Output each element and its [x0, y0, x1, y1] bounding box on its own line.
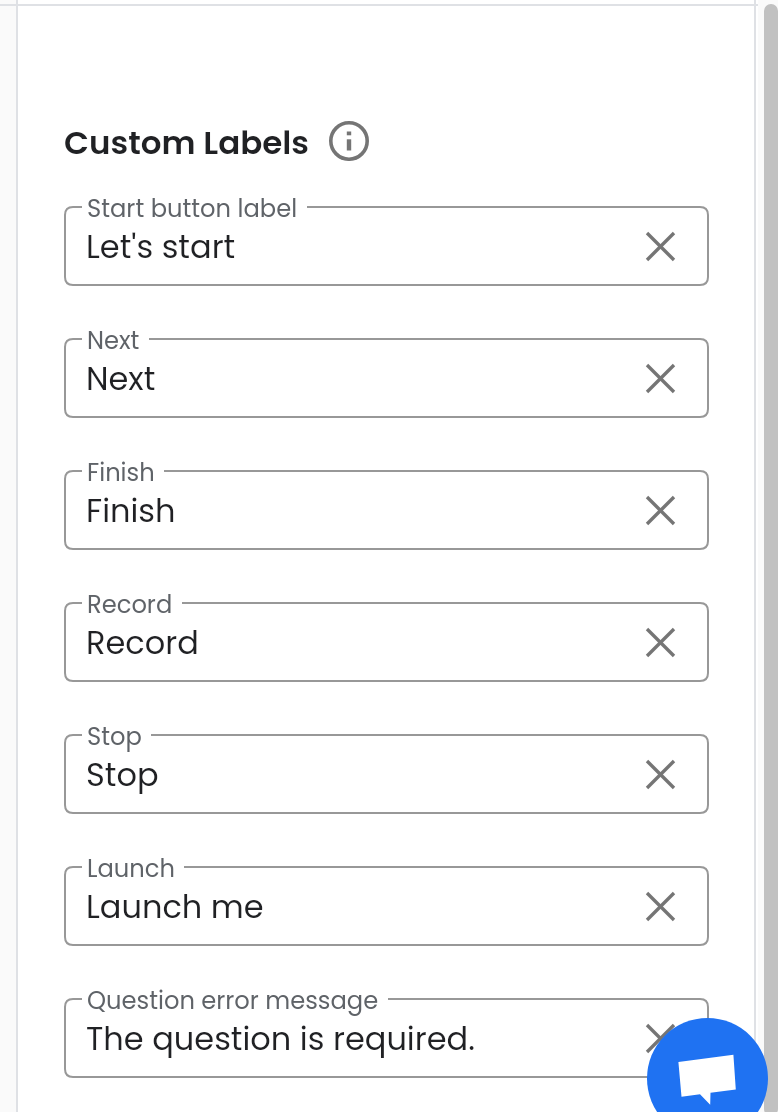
- button[interactable]: Info: [327, 120, 371, 161]
- button[interactable]: Clear Launch: [636, 882, 684, 930]
- staticText: Stop: [87, 720, 142, 754]
- button[interactable]: Finish: [64, 470, 709, 550]
- button[interactable]: Launch me: [64, 866, 709, 946]
- button[interactable]: Let's start: [64, 206, 709, 286]
- button[interactable]: Stop: [64, 734, 709, 814]
- button[interactable]: Clear Finish: [636, 486, 684, 534]
- button[interactable]: Clear Record: [636, 618, 684, 666]
- staticText: Record: [86, 620, 199, 665]
- staticText: Custom Labels: [64, 120, 310, 161]
- button[interactable]: Next: [64, 338, 709, 418]
- staticText: Finish: [86, 488, 176, 533]
- staticText: Let's start: [86, 224, 236, 269]
- button[interactable]: The question is required.: [64, 998, 709, 1078]
- staticText: Launch me: [86, 884, 264, 929]
- button[interactable]: Clear Stop: [636, 750, 684, 798]
- button[interactable]: Clear Question error message: [636, 1014, 684, 1062]
- staticText: Next: [87, 324, 140, 358]
- staticText: Question error message: [87, 984, 379, 1018]
- staticText: The question is required.: [86, 1016, 475, 1061]
- staticText: Stop: [86, 752, 159, 797]
- button[interactable]: Record: [64, 602, 709, 682]
- staticText: Start button label: [87, 192, 298, 226]
- staticText: Next: [86, 356, 156, 401]
- staticText: Record: [87, 588, 173, 622]
- staticText: Finish: [87, 456, 155, 490]
- button[interactable]: Open chat: [647, 1018, 768, 1112]
- button[interactable]: Scroll: [764, 4, 778, 1112]
- button[interactable]: Clear Start button label: [636, 222, 684, 270]
- button[interactable]: Clear Next: [636, 354, 684, 402]
- staticText: Launch: [87, 852, 175, 886]
